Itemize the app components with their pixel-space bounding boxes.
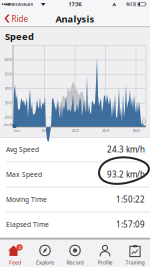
staticText: Analysis: [55, 13, 94, 25]
staticText: Profile: [97, 259, 112, 266]
staticText: 3: [19, 245, 21, 250]
staticText: 24.3 km/h: [107, 144, 145, 155]
staticText: Avg Speed: [6, 145, 39, 154]
staticText: Speed: [5, 30, 34, 43]
button[interactable]: Explore: [30, 242, 59, 267]
button[interactable]: Training: [120, 242, 149, 267]
staticText: km/h: [3, 122, 12, 127]
staticText: 20.0: [4, 114, 11, 120]
staticText: 30.0: [4, 100, 11, 105]
staticText: 40.0: [4, 86, 11, 91]
staticText: Ride: [11, 13, 28, 24]
staticText: 60.0: [4, 57, 11, 62]
staticText: 17:36: [68, 1, 81, 8]
staticText: 1:57:09: [116, 219, 145, 230]
staticText: 10.0: [41, 128, 48, 133]
staticText: 20.0: [71, 128, 78, 133]
staticText: Record: [66, 259, 83, 266]
staticText: km: [14, 128, 20, 133]
staticText: %18: [126, 1, 136, 8]
staticText: HAYATEVESIGAR: [4, 2, 33, 7]
staticText: Feed: [9, 259, 21, 266]
staticText: 93.2 km/h: [107, 169, 145, 180]
staticText: Moving Time: [6, 195, 47, 204]
staticText: 50.0: [4, 71, 11, 76]
staticText: Explore: [36, 259, 54, 266]
button[interactable]: Feed: [0, 242, 29, 267]
staticText: 40.0: [132, 128, 139, 133]
button[interactable]: Profile: [90, 242, 119, 267]
button[interactable]: Record: [60, 242, 89, 267]
staticText: Training: [125, 259, 144, 266]
staticText: Max Speed: [6, 170, 42, 179]
button[interactable]: Back to Ride: [4, 13, 30, 25]
staticText: 30.0: [102, 128, 109, 133]
staticText: Elapsed Time: [6, 220, 49, 229]
staticText: 1:50:22: [116, 194, 145, 205]
